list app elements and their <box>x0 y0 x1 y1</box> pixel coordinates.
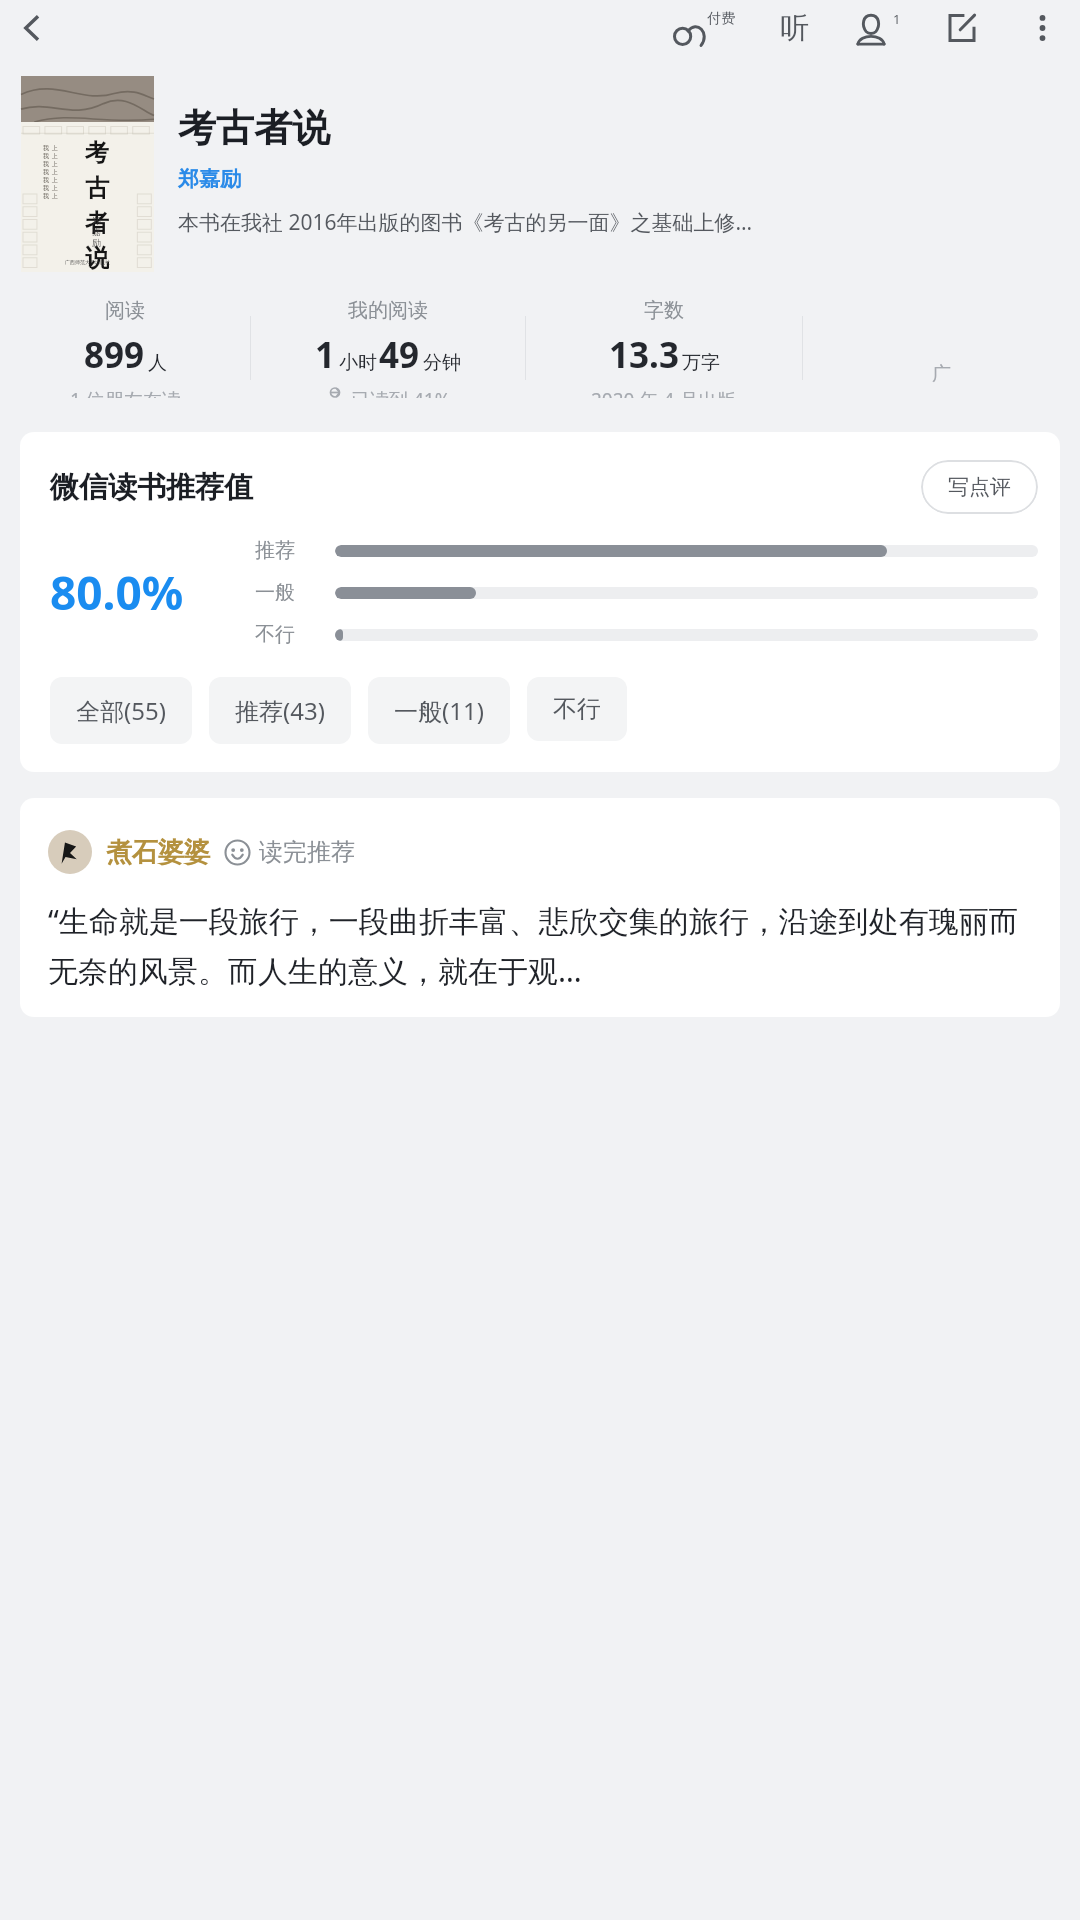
staticText: 上 <box>52 144 58 152</box>
staticText: 古 <box>85 173 109 203</box>
staticText: 读完推荐 <box>259 837 355 867</box>
staticText: 我的阅读 <box>348 298 428 323</box>
staticText: 我 <box>43 184 49 192</box>
button[interactable]: 付费 <box>656 0 752 56</box>
staticText: “生命就是一段旅行，一段曲折丰富、悲欣交集的旅行，沿途到处有瑰丽而无奈的风景。而… <box>48 900 1036 991</box>
staticText: 全部(55) <box>76 694 166 727</box>
staticText: 微信读书推荐值 <box>50 469 253 506</box>
button[interactable]: 写点评 <box>921 460 1038 514</box>
staticText: 上 <box>52 168 58 176</box>
staticText: 写点评 <box>948 474 1011 500</box>
staticText: 推荐 <box>255 538 327 563</box>
button[interactable]: More <box>1004 0 1080 56</box>
staticText: 付费 <box>707 10 735 28</box>
button[interactable]: 听 <box>752 0 836 56</box>
staticText: 分钟 <box>423 351 461 375</box>
button[interactable]: 一般(11) <box>368 677 510 744</box>
button[interactable]: 我的阅读 <box>251 298 525 398</box>
staticText: 考古者说 <box>178 104 330 152</box>
button[interactable]: 推荐(43) <box>209 677 351 744</box>
staticText: 上 <box>52 152 58 160</box>
staticText: 上 <box>52 176 58 184</box>
staticText: 1 <box>315 331 336 379</box>
button[interactable]: 考 <box>21 76 154 272</box>
button[interactable]: 不行 <box>527 677 627 741</box>
staticText: 人 <box>148 351 167 375</box>
button[interactable]: 煮石婆婆 <box>20 798 1060 1017</box>
staticText: 励 <box>92 237 101 248</box>
button[interactable]: 全部(55) <box>50 677 192 744</box>
staticText: 小时 <box>339 351 377 375</box>
button[interactable]: 阅读 <box>0 298 250 398</box>
staticText: 13.3 <box>609 331 679 379</box>
staticText: 听 <box>780 10 809 47</box>
staticText: 广西师范大学出版社 <box>65 259 110 265</box>
staticText: 阅读 <box>105 298 145 323</box>
staticText: 不行 <box>553 694 601 724</box>
staticText: 上 <box>52 192 58 200</box>
staticText: 不行 <box>255 622 327 647</box>
staticText: 上 <box>52 184 58 192</box>
staticText: 说 <box>85 243 109 272</box>
staticText: 1 位朋友在读 <box>70 387 181 398</box>
staticText: 我 <box>43 176 49 184</box>
button[interactable]: 煮石婆婆 <box>106 836 210 869</box>
button[interactable]: 字数 <box>526 298 802 398</box>
button[interactable]: Back <box>0 0 64 56</box>
staticText: 我 <box>43 160 49 168</box>
staticText: 我 <box>43 168 49 176</box>
staticText: 万字 <box>682 351 720 375</box>
staticText: 推荐(43) <box>235 694 325 727</box>
staticText: 80.0% <box>50 561 255 624</box>
button[interactable]: 郑嘉励 <box>178 166 241 192</box>
staticText: 899 <box>84 331 145 379</box>
staticText: 嘉 <box>92 226 101 237</box>
staticText: 本书在我社 2016年出版的图书《考古的另一面》之基础上修… <box>178 208 753 237</box>
staticText: 已读到 41% <box>351 387 451 398</box>
staticText: 上 <box>52 160 58 168</box>
staticText: 1 <box>893 10 901 28</box>
button[interactable]: 微信读书推荐值 <box>20 432 1060 772</box>
staticText: 字数 <box>644 298 684 323</box>
button[interactable]: Readers <box>836 0 920 56</box>
staticText: 广 <box>932 362 951 386</box>
staticText: 考 <box>85 138 109 168</box>
button[interactable]: Share <box>920 0 1004 56</box>
staticText: 郑 <box>92 215 101 226</box>
staticText: 我 <box>43 152 49 160</box>
staticText: 我 <box>43 192 49 200</box>
staticText: 49 <box>379 331 420 379</box>
staticText: 我 <box>43 144 49 152</box>
staticText: 一般 <box>255 580 327 605</box>
staticText: 者 <box>85 208 109 238</box>
staticText: 2020 年 4 月出版 <box>591 387 737 398</box>
staticText: 一般(11) <box>394 694 484 727</box>
